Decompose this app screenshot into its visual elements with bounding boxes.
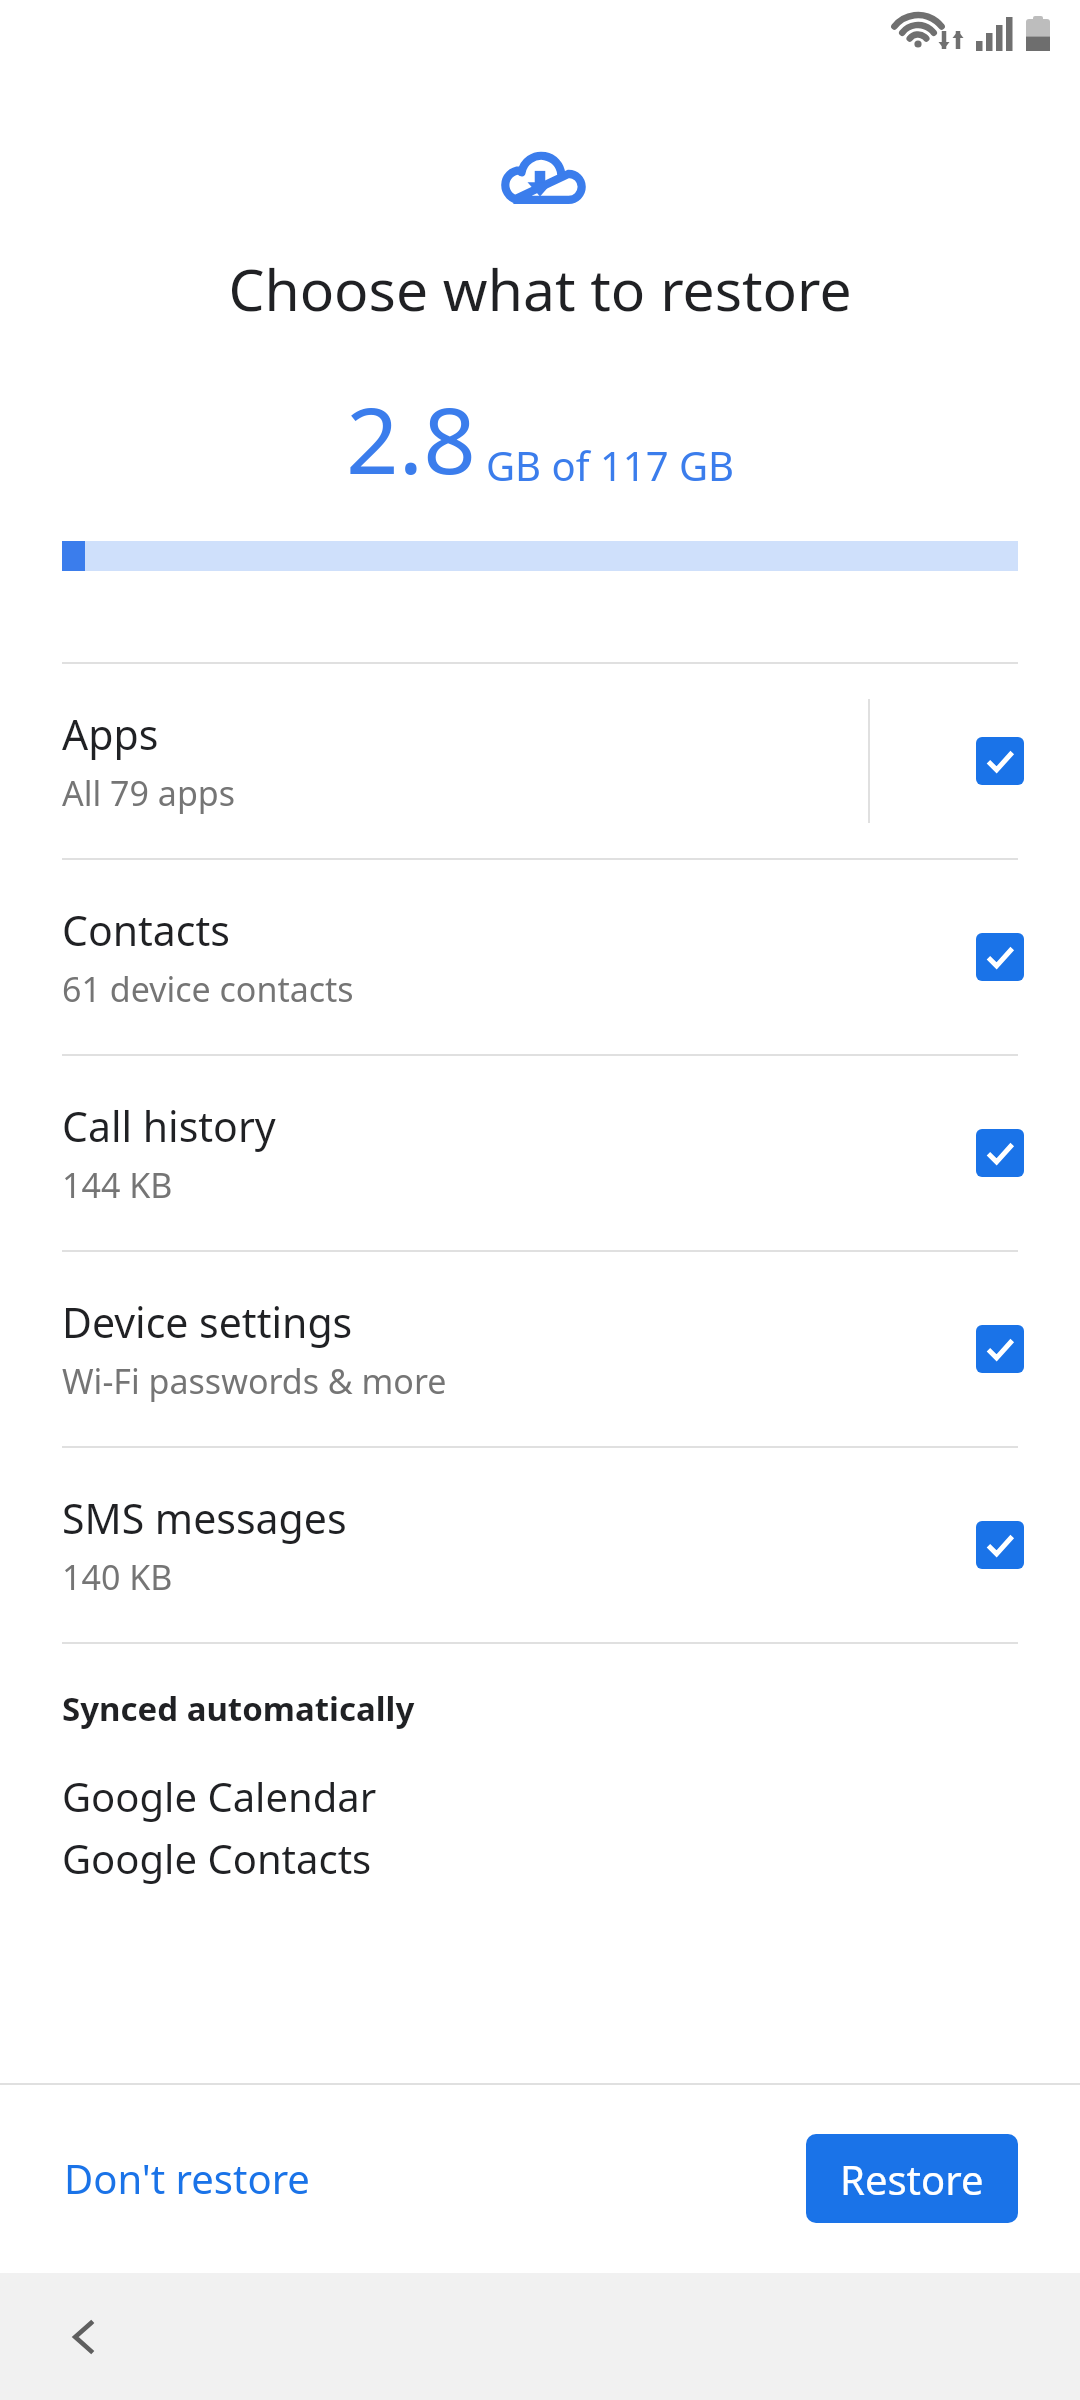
staticText: 2.8 [346,376,476,501]
button[interactable]: Contacts checkbox [964,921,1036,993]
button[interactable]: Back [40,2293,128,2381]
button[interactable]: Call history checkbox [964,1117,1036,1189]
staticText: SMS messages [62,1490,347,1546]
button[interactable]: Call history [0,1056,1080,1250]
staticText: 140 KB [62,1554,173,1600]
button[interactable]: SMS messages checkbox [964,1509,1036,1581]
staticText: Synced automatically [62,1686,415,1731]
button[interactable]: Device settings checkbox [964,1313,1036,1385]
staticText: Restore [840,2152,984,2206]
staticText: Don't restore [64,2151,310,2205]
staticText: GB of 117 GB [486,438,735,492]
button[interactable]: Don't restore [40,2135,334,2221]
staticText: Choose what to restore [0,250,1080,328]
staticText: Contacts [62,902,230,958]
button[interactable]: Device settings [0,1252,1080,1446]
button[interactable]: Contacts [0,860,1080,1054]
button[interactable]: Apps [0,664,1080,858]
staticText: Wi-Fi passwords & more [62,1358,447,1404]
staticText: Google Calendar [62,1769,377,1823]
staticText: Apps [62,706,159,762]
button[interactable]: Restore [806,2134,1018,2223]
staticText: Google Contacts [62,1831,372,1885]
staticText: 61 device contacts [62,966,354,1012]
button[interactable]: Apps checkbox [964,725,1036,797]
button[interactable]: SMS messages [0,1448,1080,1642]
staticText: Call history [62,1098,276,1154]
staticText: 144 KB [62,1162,173,1208]
staticText: Device settings [62,1294,353,1350]
staticText: All 79 apps [62,770,236,816]
